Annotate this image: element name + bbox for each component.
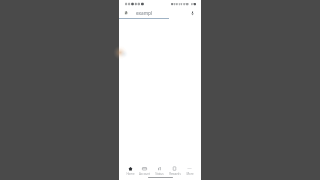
button[interactable]: Home (123, 166, 137, 175)
button[interactable]: Account (137, 166, 152, 175)
button[interactable]: More (182, 166, 197, 175)
staticText: More (186, 172, 194, 175)
button[interactable]: Rewards (167, 166, 182, 175)
button[interactable]: exampl (119, 8, 201, 18)
button[interactable]: Status (152, 166, 167, 175)
staticText: Status (155, 172, 164, 175)
staticText: Rewards (169, 172, 181, 175)
staticText: Home (126, 172, 135, 175)
staticText: exampl (136, 10, 153, 16)
button[interactable]: Voice search (189, 10, 196, 17)
staticText: Account (139, 172, 150, 175)
